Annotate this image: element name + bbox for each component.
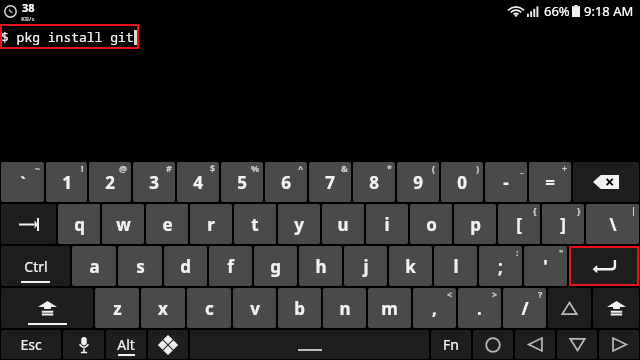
button[interactable]: w bbox=[102, 204, 144, 244]
staticText: 0 bbox=[457, 171, 467, 194]
button[interactable]: l bbox=[434, 246, 477, 286]
button[interactable]: 0 bbox=[441, 162, 483, 202]
staticText: ~ bbox=[35, 162, 41, 174]
staticText: b bbox=[294, 297, 305, 320]
button[interactable]: ' bbox=[524, 246, 567, 286]
staticText: ' bbox=[543, 255, 548, 278]
staticText: m bbox=[381, 297, 398, 320]
staticText: $ bbox=[210, 162, 216, 174]
button[interactable]: ] bbox=[542, 204, 584, 244]
staticText: x bbox=[158, 297, 168, 320]
button[interactable]: 5 bbox=[221, 162, 263, 202]
button[interactable]: \ bbox=[586, 204, 639, 244]
staticText: , bbox=[432, 297, 437, 320]
button[interactable]: Enter bbox=[569, 246, 639, 286]
button[interactable]: c bbox=[187, 288, 231, 328]
button[interactable]: n bbox=[323, 288, 366, 328]
button[interactable]: . bbox=[458, 288, 501, 328]
button[interactable]: 3 bbox=[133, 162, 175, 202]
button[interactable]: z bbox=[95, 288, 139, 328]
button[interactable]: q bbox=[58, 204, 100, 244]
staticText: e bbox=[162, 213, 173, 236]
button[interactable]: Voice input bbox=[63, 330, 104, 359]
button[interactable]: a bbox=[72, 246, 116, 286]
staticText: ] bbox=[560, 213, 566, 236]
staticText: g bbox=[270, 255, 281, 278]
staticText: w bbox=[116, 213, 131, 236]
button[interactable]: Alt bbox=[106, 330, 146, 359]
staticText: ` bbox=[20, 172, 26, 192]
staticText: n bbox=[339, 297, 351, 320]
staticText: * bbox=[387, 162, 392, 174]
button[interactable]: g bbox=[254, 246, 297, 286]
button[interactable]: Esc bbox=[1, 330, 61, 359]
staticText: k bbox=[405, 255, 416, 278]
staticText: @ bbox=[119, 162, 128, 174]
staticText: ^ bbox=[298, 162, 304, 174]
staticText: : bbox=[516, 246, 519, 258]
button[interactable]: 9 bbox=[397, 162, 439, 202]
button[interactable]: i bbox=[366, 204, 408, 244]
button[interactable]: 7 bbox=[309, 162, 351, 202]
button[interactable]: v bbox=[233, 288, 276, 328]
staticText: $ pkg install git bbox=[1, 28, 134, 46]
staticText: y bbox=[294, 213, 304, 236]
button[interactable]: Shift bbox=[1, 288, 93, 328]
button[interactable]: 4 bbox=[177, 162, 219, 202]
staticText: u bbox=[337, 213, 349, 236]
button[interactable]: ` bbox=[1, 162, 44, 202]
button[interactable]: Down bbox=[557, 330, 597, 359]
button[interactable]: u bbox=[322, 204, 364, 244]
button[interactable]: - bbox=[485, 162, 527, 202]
staticText: Esc bbox=[20, 335, 42, 354]
staticText: 1 bbox=[62, 171, 72, 194]
button[interactable]: p bbox=[454, 204, 496, 244]
button[interactable]: e bbox=[146, 204, 188, 244]
button[interactable]: , bbox=[413, 288, 456, 328]
staticText: \ bbox=[609, 213, 617, 236]
button[interactable]: b bbox=[278, 288, 321, 328]
button[interactable]: d bbox=[164, 246, 207, 286]
button[interactable]: Backspace bbox=[573, 162, 639, 202]
button[interactable]: Ctrl bbox=[1, 246, 70, 286]
staticText: 4 bbox=[193, 171, 203, 194]
button[interactable]: r bbox=[190, 204, 232, 244]
staticText: 7 bbox=[325, 171, 335, 194]
button[interactable]: $ pkg install git bbox=[0, 24, 139, 49]
button[interactable]: y bbox=[278, 204, 320, 244]
button[interactable]: Switch keyboard bbox=[148, 330, 188, 359]
button[interactable]: [ bbox=[498, 204, 540, 244]
button[interactable]: ; bbox=[479, 246, 522, 286]
staticText: p bbox=[470, 213, 481, 236]
button[interactable]: 1 bbox=[46, 162, 87, 202]
button[interactable]: / bbox=[503, 288, 546, 328]
button[interactable]: Home bbox=[473, 330, 513, 359]
button[interactable]: f bbox=[209, 246, 252, 286]
button[interactable]: Shift bbox=[593, 288, 639, 328]
button[interactable]: h bbox=[299, 246, 342, 286]
button[interactable]: m bbox=[368, 288, 411, 328]
staticText: 9 bbox=[413, 171, 423, 194]
button[interactable]: = bbox=[529, 162, 571, 202]
button[interactable]: j bbox=[344, 246, 387, 286]
button[interactable]: Up bbox=[548, 288, 591, 328]
staticText: r bbox=[207, 213, 215, 236]
staticText: - bbox=[503, 171, 509, 194]
button[interactable]: 6 bbox=[265, 162, 307, 202]
button[interactable]: Left bbox=[515, 330, 555, 359]
staticText: q bbox=[74, 213, 85, 236]
button[interactable]: Right bbox=[599, 330, 639, 359]
button[interactable]: o bbox=[410, 204, 452, 244]
button[interactable]: Tab bbox=[1, 204, 56, 244]
staticText: i bbox=[384, 213, 390, 236]
button[interactable]: t bbox=[234, 204, 276, 244]
button[interactable]: 2 bbox=[89, 162, 131, 202]
staticText: [ bbox=[516, 213, 522, 236]
button[interactable]: Fn bbox=[431, 330, 471, 359]
button[interactable]: x bbox=[141, 288, 185, 328]
button[interactable]: 8 bbox=[353, 162, 395, 202]
button[interactable]: k bbox=[389, 246, 432, 286]
staticText: d bbox=[180, 255, 191, 278]
button[interactable]: s bbox=[118, 246, 162, 286]
button[interactable]: Space bbox=[190, 330, 429, 359]
